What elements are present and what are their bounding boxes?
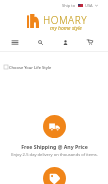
staticText: Enjoy 2-5 day delivery on thousands of i… (11, 152, 98, 158)
staticText: Choose Your Life Style (9, 65, 52, 70)
staticText: USA (85, 3, 93, 8)
button[interactable]: Shopping cart (82, 34, 98, 50)
button[interactable]: Free shipping (43, 115, 66, 138)
button[interactable]: Menu (7, 34, 23, 50)
button[interactable]: Search (32, 34, 48, 50)
button[interactable]: Account (57, 34, 73, 50)
staticText: Free Shipping @ Any Price (21, 143, 88, 150)
button[interactable]: Best price (43, 167, 66, 184)
staticText: my home style (50, 25, 82, 31)
staticText: HOMARY (43, 13, 88, 27)
staticText: Ship to (62, 3, 76, 8)
